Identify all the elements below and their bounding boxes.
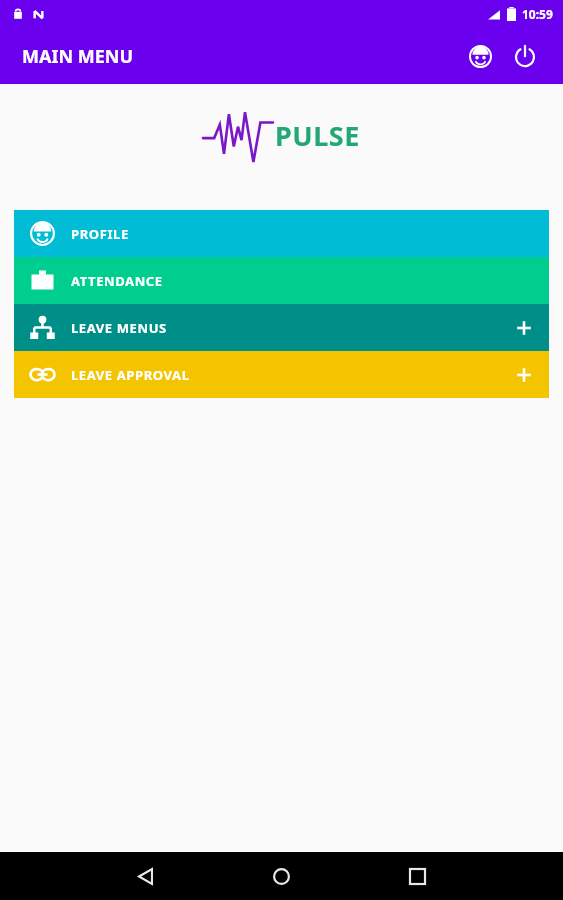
staticText: MAIN MENU [22,44,134,69]
staticText: ATTENDANCE [71,272,163,290]
button[interactable]: Back [123,854,167,898]
button[interactable]: LEAVE MENUS [14,304,549,351]
staticText: PULSE [275,117,360,154]
button[interactable]: LEAVE APPROVAL [14,351,549,398]
staticText: 10:59 [522,6,553,22]
button[interactable]: Home [259,854,303,898]
button[interactable]: ATTENDANCE [14,257,549,304]
staticText: PROFILE [71,225,129,243]
staticText: LEAVE MENUS [71,319,167,337]
button[interactable]: PROFILE [14,210,549,257]
button[interactable]: Profile [460,36,500,76]
button[interactable]: Recent apps [395,854,439,898]
staticText: LEAVE APPROVAL [71,366,190,384]
button[interactable]: Power / Logout [505,36,545,76]
